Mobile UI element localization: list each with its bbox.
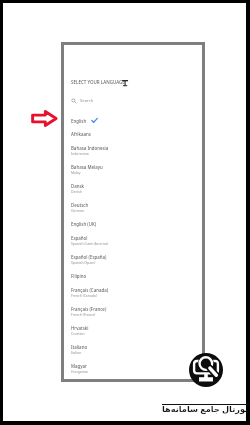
- button[interactable]: Afrikaans: [64, 127, 202, 141]
- staticText: Deutsch: [71, 202, 89, 208]
- staticText: Español: [71, 235, 88, 241]
- staticText: Afrikaans: [71, 131, 91, 137]
- button[interactable]: Français (Canada): [64, 283, 202, 302]
- other: Pointer: [31, 110, 58, 127]
- staticText: Italiano: [71, 344, 88, 350]
- button[interactable]: Hrvatski: [64, 321, 202, 340]
- button[interactable]: Magyar: [64, 359, 202, 378]
- staticText: SELECT YOUR LANGUAGE: [71, 79, 125, 85]
- staticText: Français (Canada): [71, 287, 109, 293]
- staticText: Magyar: [71, 363, 87, 369]
- staticText: Croatian: [71, 331, 85, 336]
- staticText: Filipino: [71, 273, 87, 279]
- staticText: Search: [80, 98, 94, 104]
- button[interactable]: Filipino: [64, 269, 202, 283]
- staticText: Indonesian: [71, 151, 89, 156]
- staticText: Français (France): [71, 306, 107, 312]
- staticText: Spanish (Latin America): [71, 241, 109, 246]
- button[interactable]: Français (France): [64, 302, 202, 321]
- button[interactable]: Bahasa Indonesia: [64, 141, 202, 160]
- staticText: English: [71, 118, 87, 124]
- other: Samanehha logo: [189, 353, 223, 387]
- staticText: Hrvatski: [71, 325, 89, 331]
- button[interactable]: Search: [64, 98, 202, 104]
- staticText: Bahasa Melayu: [71, 164, 103, 170]
- staticText: Español (España): [71, 254, 107, 260]
- staticText: French (France): [71, 312, 96, 317]
- staticText: Bahasa Indonesia: [71, 145, 109, 151]
- staticText: Spanish (Spain): [71, 260, 96, 265]
- staticText: Malay: [71, 170, 81, 175]
- staticText: Danish: [71, 189, 83, 194]
- staticText: French (Canada): [71, 293, 97, 298]
- button[interactable]: Deutsch: [64, 198, 202, 217]
- staticText: پورتال جامع سامانه‌ها: [162, 403, 249, 414]
- staticText: Dansk: [71, 183, 85, 189]
- staticText: Hungarian: [71, 369, 88, 374]
- staticText: Italian: [71, 350, 82, 355]
- button[interactable]: Italiano: [64, 340, 202, 359]
- button[interactable]: Español: [64, 231, 202, 250]
- button[interactable]: English: [64, 113, 202, 127]
- button[interactable]: Bahasa Melayu: [64, 160, 202, 179]
- staticText: English (UK): [71, 221, 97, 227]
- staticText: German: [71, 208, 84, 213]
- button[interactable]: Español (España): [64, 250, 202, 269]
- button[interactable]: English (UK): [64, 217, 202, 231]
- button[interactable]: Dansk: [64, 179, 202, 198]
